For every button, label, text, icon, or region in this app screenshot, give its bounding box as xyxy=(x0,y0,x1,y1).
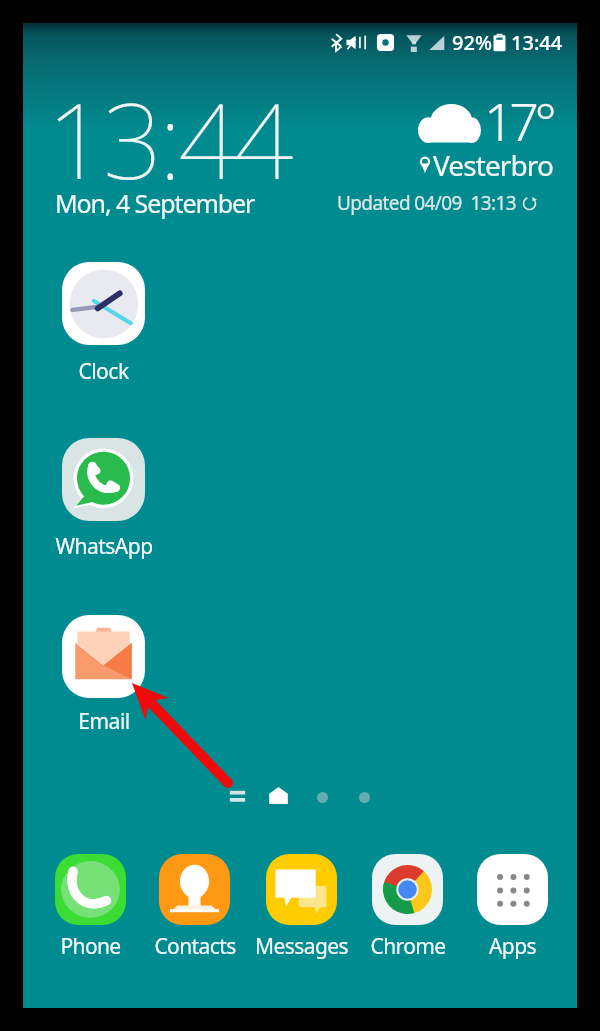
button[interactable]: Chrome xyxy=(354,854,461,979)
staticText: Updated 04/09 13:13 xyxy=(337,190,517,216)
button[interactable]: Apps xyxy=(459,854,566,979)
staticText: Phone xyxy=(60,932,121,961)
staticText: Chrome xyxy=(370,932,446,961)
staticText: Email xyxy=(78,707,130,736)
staticText: Contacts xyxy=(154,932,236,961)
staticText: 13:44 xyxy=(511,29,563,56)
button[interactable]: Page 3 xyxy=(317,792,328,803)
staticText: Apps xyxy=(489,932,536,961)
button[interactable]: Home screen settings xyxy=(229,789,246,804)
button[interactable]: Page 4 xyxy=(359,792,370,803)
button[interactable]: Messages xyxy=(248,854,355,979)
staticText: 17° xyxy=(484,85,553,156)
staticText: Clock xyxy=(78,357,129,386)
staticText: 13:44 xyxy=(47,68,291,210)
button[interactable]: Phone xyxy=(37,854,144,979)
button[interactable]: Clock xyxy=(40,256,167,391)
button[interactable]: Email xyxy=(40,609,167,741)
staticText: 92% xyxy=(452,29,492,56)
button[interactable]: WhatsApp xyxy=(40,432,167,566)
button[interactable]: Contacts xyxy=(141,854,248,979)
button[interactable]: Home screen xyxy=(269,787,288,804)
staticText: Mon, 4 September xyxy=(55,186,255,220)
staticText: Vesterbro xyxy=(433,146,553,184)
staticText: WhatsApp xyxy=(55,532,153,561)
staticText: Messages xyxy=(255,932,348,961)
